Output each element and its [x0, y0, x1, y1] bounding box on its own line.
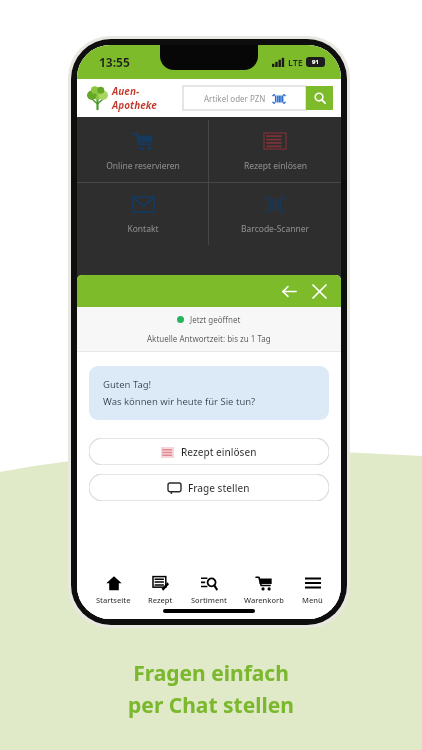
- staticText: Artikel oder PZN: [204, 93, 266, 104]
- staticText: LTE: [288, 56, 303, 68]
- button[interactable]: Menü: [299, 573, 326, 607]
- staticText: Was können wir heute für Sie tun?: [103, 395, 256, 408]
- button[interactable]: Rezept: [145, 573, 176, 607]
- staticText: iPhone and its design are trademarks of …: [92, 368, 99, 499]
- button[interactable]: Artikel oder PZN: [183, 86, 333, 110]
- staticText: Sortiment: [191, 595, 227, 605]
- button[interactable]: Zurück: [277, 279, 301, 303]
- staticText: Warenkorb: [244, 595, 284, 605]
- staticText: Rezept: [148, 595, 173, 605]
- staticText: Kontakt: [127, 223, 159, 235]
- button[interactable]: Online reservieren: [77, 120, 208, 182]
- staticText: Jetzt geöffnet: [190, 314, 241, 325]
- button[interactable]: Frage stellen: [89, 474, 329, 501]
- staticText: Online reservieren: [106, 160, 180, 172]
- button[interactable]: Schließen: [307, 279, 331, 303]
- staticText: Startseite: [96, 595, 131, 605]
- staticText: Auen-: [112, 84, 140, 98]
- staticText: Rezept einlösen: [181, 445, 257, 459]
- button[interactable]: Barcode-Scanner: [209, 183, 341, 245]
- staticText: Fragen einfach: [133, 659, 289, 688]
- staticText: Aktuelle Antwortzeit: bis zu 1 Tag: [147, 333, 271, 344]
- staticText: Rezept einlösen: [244, 160, 307, 172]
- staticText: Frage stellen: [188, 481, 250, 495]
- button[interactable]: Warenkorb: [241, 573, 287, 607]
- staticText: Guten Tag!: [103, 378, 152, 391]
- staticText: per Chat stellen: [128, 691, 294, 720]
- staticText: Apotheke: [112, 98, 157, 112]
- button[interactable]: Sortiment: [188, 573, 230, 607]
- button[interactable]: Startseite: [93, 573, 134, 607]
- staticText: Barcode-Scanner: [241, 223, 309, 235]
- staticText: Menü: [302, 595, 323, 605]
- staticText: 13:55: [99, 54, 130, 70]
- staticText: 91: [312, 58, 319, 66]
- button[interactable]: Rezept einlösen: [209, 120, 341, 182]
- button[interactable]: Kontakt: [77, 183, 208, 245]
- button[interactable]: Rezept einlösen: [89, 438, 329, 465]
